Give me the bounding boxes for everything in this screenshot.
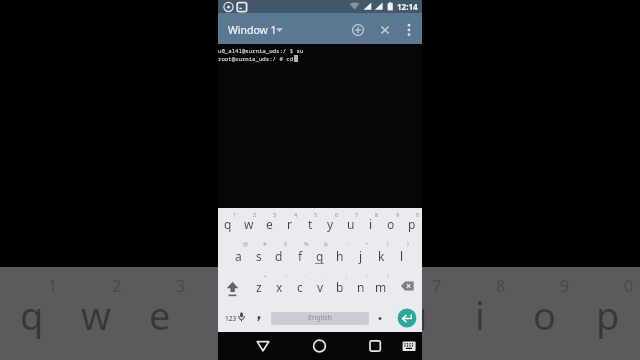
button[interactable] xyxy=(269,271,289,302)
staticText: ) xyxy=(407,240,409,247)
button[interactable] xyxy=(340,208,360,239)
button[interactable] xyxy=(310,240,330,271)
button[interactable] xyxy=(238,208,258,239)
button[interactable] xyxy=(218,208,238,239)
button[interactable] xyxy=(402,208,422,239)
button[interactable] xyxy=(381,302,422,332)
staticText: 1 xyxy=(48,275,58,297)
staticText: i xyxy=(369,216,373,232)
staticText: v xyxy=(317,279,324,295)
staticText: root@surnia_uds:/ # cd xyxy=(218,55,294,63)
button[interactable] xyxy=(362,334,388,358)
staticText: h xyxy=(336,248,344,264)
staticText: a xyxy=(235,248,242,264)
staticText: p xyxy=(408,216,416,232)
button[interactable] xyxy=(361,208,381,239)
button[interactable] xyxy=(271,312,369,325)
staticText: u xyxy=(347,216,355,232)
staticText: 0 xyxy=(416,211,420,218)
staticText: 12:14 xyxy=(397,1,418,12)
staticText: 8 xyxy=(375,211,379,218)
staticText: % xyxy=(304,240,309,247)
staticText: 7 xyxy=(432,275,442,297)
staticText: o xyxy=(387,216,395,232)
staticText: 4 xyxy=(294,211,298,218)
button[interactable] xyxy=(249,271,269,302)
button[interactable] xyxy=(381,208,401,239)
staticText: d xyxy=(275,248,283,264)
button[interactable] xyxy=(228,240,248,271)
staticText: y xyxy=(327,216,334,232)
staticText: 6 xyxy=(335,211,339,218)
staticText: ' xyxy=(305,274,307,281)
button[interactable] xyxy=(289,240,309,271)
staticText: e xyxy=(266,216,273,232)
button[interactable] xyxy=(320,208,340,239)
staticText: : xyxy=(325,274,327,281)
button[interactable] xyxy=(381,271,422,302)
staticText: ; xyxy=(346,274,348,281)
button[interactable] xyxy=(306,334,332,358)
staticText: q xyxy=(20,289,44,341)
button[interactable] xyxy=(218,271,259,302)
button[interactable] xyxy=(218,302,259,332)
button[interactable] xyxy=(218,13,422,44)
staticText: c xyxy=(297,279,303,295)
staticText: - xyxy=(346,240,348,247)
staticText: 1 xyxy=(233,211,237,218)
staticText: 9 xyxy=(560,275,570,297)
staticText: g xyxy=(316,248,324,264)
button[interactable] xyxy=(398,334,420,358)
staticText: ( xyxy=(387,240,389,247)
staticText: l xyxy=(400,248,404,264)
button[interactable] xyxy=(259,208,279,239)
staticText: t xyxy=(281,289,295,341)
staticText: t xyxy=(308,216,313,232)
button[interactable] xyxy=(310,271,330,302)
staticText: s xyxy=(256,248,262,264)
staticText: w xyxy=(244,216,254,232)
staticText: # xyxy=(263,240,267,247)
staticText: ? xyxy=(387,274,390,281)
button[interactable] xyxy=(391,240,411,271)
button[interactable] xyxy=(371,240,391,271)
staticText: f xyxy=(298,248,303,264)
staticText: x xyxy=(276,279,283,295)
staticText: 6 xyxy=(368,275,378,297)
staticText: 3 xyxy=(176,275,186,297)
button[interactable] xyxy=(289,271,309,302)
staticText: @ xyxy=(243,240,248,247)
staticText: " xyxy=(285,274,288,281)
staticText: 2 xyxy=(253,211,257,218)
staticText: ! xyxy=(366,274,368,281)
button[interactable] xyxy=(330,271,350,302)
staticText: y xyxy=(342,289,362,341)
button[interactable] xyxy=(279,208,299,239)
staticText: z xyxy=(256,279,262,295)
staticText: 9 xyxy=(396,211,400,218)
staticText: Window 1 xyxy=(228,23,277,37)
button[interactable] xyxy=(300,208,320,239)
button[interactable] xyxy=(269,240,289,271)
button[interactable] xyxy=(330,240,350,271)
staticText: 2 xyxy=(112,275,122,297)
staticText: 3 xyxy=(273,211,277,218)
staticText: b xyxy=(336,279,344,295)
staticText: 8 xyxy=(496,275,506,297)
button[interactable] xyxy=(351,271,371,302)
button[interactable] xyxy=(371,271,391,302)
button[interactable] xyxy=(351,240,371,271)
staticText: k xyxy=(378,248,385,264)
staticText: u xyxy=(404,289,428,341)
button[interactable] xyxy=(250,334,276,358)
staticText: + xyxy=(365,240,369,247)
staticText: q xyxy=(224,216,232,232)
staticText: $ xyxy=(284,240,288,247)
button[interactable] xyxy=(249,240,269,271)
staticText: j xyxy=(359,248,363,264)
staticText: r xyxy=(216,289,232,341)
staticText: p xyxy=(596,289,620,341)
staticText: e xyxy=(149,289,171,341)
